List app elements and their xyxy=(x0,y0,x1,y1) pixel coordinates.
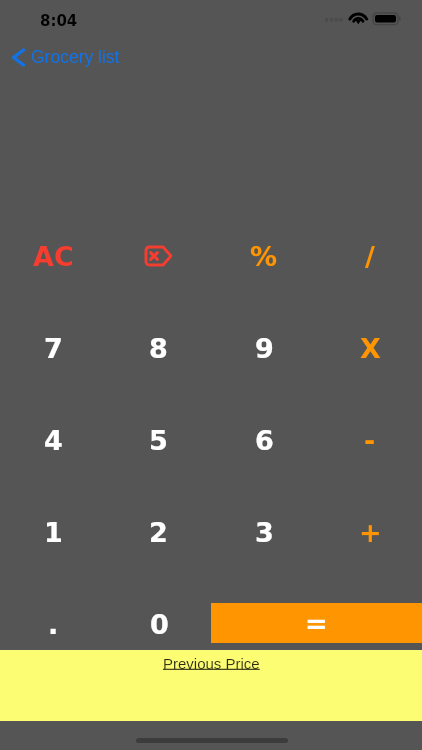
button[interactable]: 2 xyxy=(106,486,211,578)
staticText: 8:04 xyxy=(40,12,78,29)
staticText: Grocery list xyxy=(31,47,120,67)
button[interactable]: Backspace xyxy=(106,210,211,302)
button[interactable]: 0 xyxy=(106,578,212,670)
button[interactable]: X xyxy=(317,302,422,394)
button[interactable]: 7 xyxy=(1,302,106,394)
staticText: 6 xyxy=(255,425,274,456)
button[interactable]: AC xyxy=(1,210,106,302)
staticText: 0 xyxy=(150,609,169,640)
button[interactable]: 9 xyxy=(211,302,317,394)
staticText: % xyxy=(250,241,278,272)
staticText: 8 xyxy=(149,333,168,364)
staticText: 2 xyxy=(149,517,168,548)
staticText: 4 xyxy=(44,425,63,456)
button[interactable]: + xyxy=(317,486,422,578)
staticText: 3 xyxy=(255,517,274,548)
staticText: AC xyxy=(33,241,74,272)
button[interactable]: % xyxy=(211,210,317,302)
staticText: 5 xyxy=(149,425,168,456)
button[interactable]: 5 xyxy=(106,394,211,486)
button[interactable]: 3 xyxy=(211,486,317,578)
button[interactable]: - xyxy=(317,394,422,486)
staticText: 1 xyxy=(44,517,63,548)
staticText: 7 xyxy=(44,333,63,364)
button[interactable]: 1 xyxy=(1,486,106,578)
staticText: X xyxy=(360,333,381,364)
staticText: - xyxy=(364,425,376,456)
button[interactable]: 4 xyxy=(1,394,106,486)
staticText: . xyxy=(48,609,59,640)
button[interactable]: Previous Price xyxy=(163,655,260,672)
staticText: Previous Price xyxy=(163,655,260,672)
button[interactable]: . xyxy=(1,578,106,670)
button[interactable]: = xyxy=(211,603,422,643)
button[interactable]: Grocery list xyxy=(12,43,120,71)
staticText: = xyxy=(305,608,328,639)
staticText: + xyxy=(359,517,382,548)
staticText: / xyxy=(365,241,375,272)
button[interactable]: / xyxy=(317,210,422,302)
staticText: 9 xyxy=(255,333,274,364)
button[interactable]: 8 xyxy=(106,302,211,394)
button[interactable]: 6 xyxy=(211,394,317,486)
